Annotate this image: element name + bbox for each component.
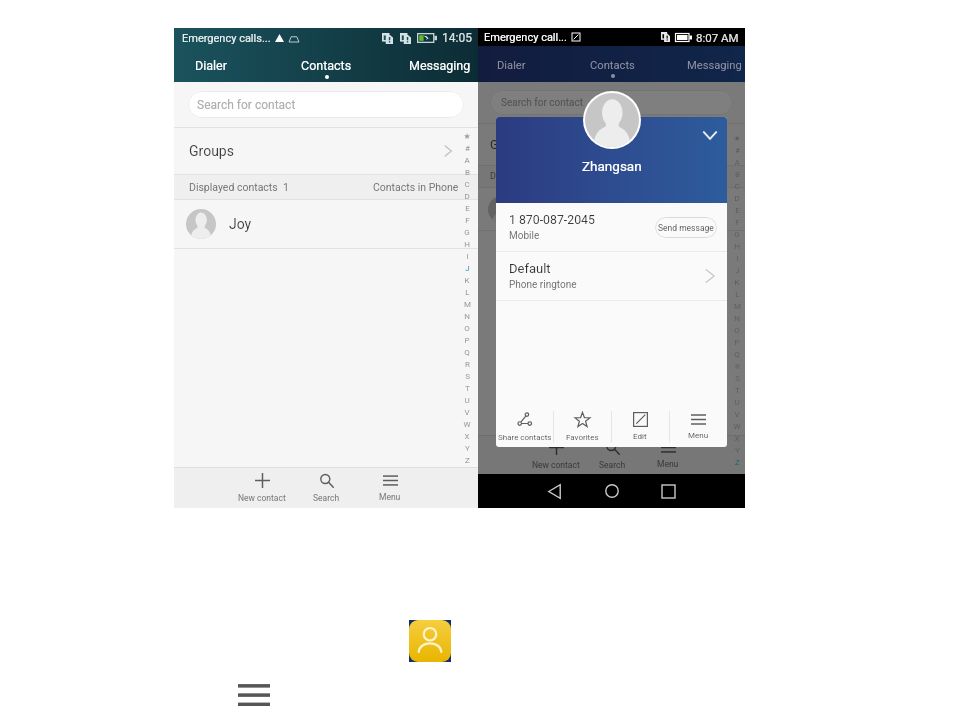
button[interactable]: O (456, 322, 478, 334)
button[interactable]: L (456, 286, 478, 298)
button[interactable]: Contacts app icon (409, 620, 451, 662)
button[interactable]: Home (583, 474, 640, 508)
button[interactable]: Menu (669, 406, 727, 447)
button[interactable]: I (456, 250, 478, 262)
button[interactable]: R (726, 360, 748, 372)
button[interactable]: Search (584, 436, 640, 474)
button[interactable]: V (726, 408, 748, 420)
button[interactable]: Menu (358, 468, 422, 508)
button[interactable]: Dialer (478, 50, 544, 86)
button[interactable]: W (726, 420, 748, 432)
button[interactable]: # (726, 144, 748, 156)
button[interactable]: P (456, 334, 478, 346)
staticText: 8:07 AM (696, 31, 739, 44)
button[interactable]: Edit (611, 406, 669, 447)
staticText: J (465, 264, 470, 273)
button[interactable]: Z (726, 456, 748, 468)
button[interactable]: X (726, 432, 748, 444)
button[interactable]: U (456, 394, 478, 406)
staticText: # (465, 144, 470, 153)
button[interactable]: Menu (640, 436, 696, 474)
button[interactable]: B (726, 168, 748, 180)
button[interactable]: Search (294, 468, 358, 508)
button[interactable]: H (456, 238, 478, 250)
button[interactable]: U (726, 396, 748, 408)
button[interactable]: X (456, 430, 478, 442)
button[interactable]: K (726, 276, 748, 288)
button[interactable]: R (456, 358, 478, 370)
staticText: ★ (733, 134, 741, 143)
button[interactable]: ★ (726, 132, 748, 144)
staticText: J (735, 266, 740, 275)
staticText: S (465, 372, 470, 381)
button[interactable]: N (726, 312, 748, 324)
button[interactable]: M (456, 298, 478, 310)
button[interactable]: A (456, 154, 478, 166)
button[interactable]: B (456, 166, 478, 178)
button[interactable]: New contact (528, 436, 584, 474)
button[interactable]: W (456, 418, 478, 430)
button[interactable]: Z (456, 454, 478, 466)
staticText: C (734, 182, 740, 191)
button[interactable]: # (456, 142, 478, 154)
staticText: H (464, 240, 470, 249)
button[interactable]: E (726, 204, 748, 216)
button[interactable]: K (456, 274, 478, 286)
button[interactable]: J (456, 262, 478, 274)
button[interactable]: J (726, 264, 748, 276)
button[interactable]: Recents (640, 474, 697, 508)
button[interactable]: D (726, 192, 748, 204)
button[interactable]: Contacts (276, 51, 376, 85)
button[interactable]: S (456, 370, 478, 382)
button[interactable]: ★ (456, 130, 478, 142)
button[interactable]: S (726, 372, 748, 384)
button[interactable]: E (456, 202, 478, 214)
button[interactable]: L (726, 288, 748, 300)
button[interactable]: Y (456, 442, 478, 454)
button[interactable]: H (726, 240, 748, 252)
button[interactable]: P (726, 336, 748, 348)
staticText: Share contacts (498, 433, 552, 442)
staticText: Menu (379, 492, 401, 502)
button[interactable]: C (456, 178, 478, 190)
staticText: R (735, 362, 740, 371)
button[interactable]: V (456, 406, 478, 418)
button[interactable]: Default (496, 252, 727, 300)
button[interactable]: Messaging (402, 51, 478, 85)
staticText: Contacts (590, 59, 635, 72)
button[interactable]: T (726, 384, 748, 396)
button[interactable]: Share contacts (496, 406, 553, 447)
button[interactable]: T (456, 382, 478, 394)
button[interactable]: Q (456, 346, 478, 358)
button[interactable]: New contact (230, 468, 294, 508)
button[interactable]: O (726, 324, 748, 336)
button[interactable]: M (726, 300, 748, 312)
button[interactable]: Q (726, 348, 748, 360)
button[interactable]: G (726, 228, 748, 240)
staticText: Search for contact (501, 97, 583, 109)
button[interactable]: 1 870-087-2045 (496, 203, 727, 251)
button[interactable]: Messaging (683, 50, 745, 86)
staticText: A (734, 158, 740, 167)
button[interactable]: Joy (174, 200, 478, 248)
button[interactable]: G (456, 226, 478, 238)
button[interactable]: F (726, 216, 748, 228)
button[interactable]: C (726, 180, 748, 192)
button[interactable]: Collapse (699, 124, 721, 146)
staticText: Contacts (301, 58, 352, 73)
button[interactable]: Groups (174, 128, 478, 174)
button[interactable]: Dialer (174, 51, 248, 85)
button[interactable]: I (726, 252, 748, 264)
button[interactable]: Back (526, 474, 583, 508)
button[interactable]: Y (726, 444, 748, 456)
button[interactable]: Favorites (553, 406, 611, 447)
button[interactable]: Contacts (562, 50, 662, 86)
button[interactable]: D (456, 190, 478, 202)
button[interactable]: Search for contact (188, 91, 464, 118)
button[interactable]: N (456, 310, 478, 322)
button[interactable]: F (456, 214, 478, 226)
button[interactable]: Send message (655, 217, 717, 238)
staticText: B (735, 170, 740, 179)
staticText: D (734, 194, 740, 203)
button[interactable]: A (726, 156, 748, 168)
